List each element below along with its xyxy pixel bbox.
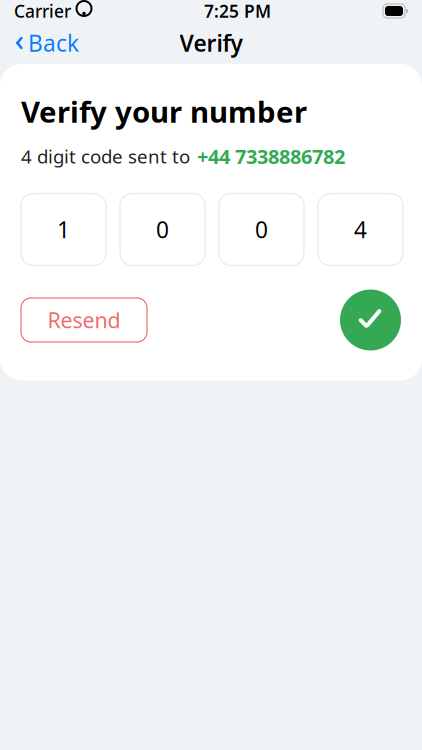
button[interactable]: Confirm code: [340, 289, 401, 350]
staticText: Carrier: [14, 0, 71, 22]
staticText: 0: [255, 214, 268, 245]
staticText: 4 digit code sent to: [21, 144, 190, 169]
button[interactable]: 0: [219, 193, 304, 265]
staticText: 7:25 PM: [204, 0, 271, 22]
staticText: Verify: [179, 28, 242, 58]
button[interactable]: 1: [21, 193, 106, 265]
button[interactable]: Resend: [21, 298, 147, 342]
staticText: Verify your number: [21, 92, 307, 131]
staticText: Back: [28, 28, 79, 58]
staticText: 4: [354, 214, 367, 245]
button[interactable]: 4: [318, 193, 403, 265]
staticText: 0: [156, 214, 169, 245]
button[interactable]: 0: [120, 193, 205, 265]
staticText: Resend: [47, 306, 120, 334]
staticText: 1: [57, 214, 70, 245]
button[interactable]: Back: [0, 23, 91, 63]
staticText: +44 7338886782: [197, 143, 345, 170]
